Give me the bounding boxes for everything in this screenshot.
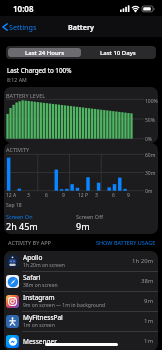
staticText: Last 24 Hours — [25, 49, 65, 57]
staticText: 50% — [145, 117, 155, 124]
staticText: 38m on screen — [23, 282, 58, 289]
staticText: Apollo — [23, 253, 43, 262]
staticText: 9m — [144, 297, 154, 305]
staticText: 0% — [145, 136, 153, 143]
staticText: 6 — [112, 192, 115, 199]
staticText: Battery — [68, 22, 95, 32]
staticText: Settings — [9, 22, 37, 32]
staticText: 3 — [95, 192, 98, 199]
staticText: Safari — [23, 273, 41, 282]
staticText: 1h 20m — [132, 257, 154, 265]
button[interactable]: Safari — [4, 271, 158, 291]
staticText: 8:12 AM — [7, 76, 27, 83]
staticText: 30m — [145, 170, 156, 177]
button[interactable]: Last 24 Hours — [8, 48, 81, 57]
button[interactable]: Apollo — [4, 251, 158, 271]
staticText: Screen On — [6, 213, 33, 220]
staticText: 1m — [144, 337, 154, 345]
staticText: 12 A — [6, 192, 17, 199]
staticText: 100% — [145, 98, 158, 105]
staticText: Last 10 Days — [100, 49, 136, 57]
staticText: MyFitnessPal — [23, 313, 63, 322]
staticText: Messenger — [23, 337, 57, 346]
staticText: 60m — [145, 152, 156, 159]
staticText: 9m on screen — 1m in background — [23, 302, 106, 309]
staticText: 2h 45m — [6, 220, 38, 232]
staticText: 0m — [145, 188, 153, 195]
staticText: 10:08 — [13, 3, 34, 14]
staticText: 9 — [127, 192, 130, 199]
staticText: 9m — [76, 220, 90, 232]
staticText: 1m — [144, 317, 154, 325]
staticText: Screen Off — [76, 213, 103, 220]
button[interactable]: Last 10 Days — [81, 48, 154, 57]
staticText: 38m — [141, 277, 154, 285]
button[interactable]: Messenger — [4, 331, 158, 350]
staticText: 3 — [27, 192, 30, 199]
button[interactable]: MyFitnessPal — [4, 311, 158, 331]
staticText: ACTIVITY BY APP — [8, 239, 51, 246]
staticText: Last Charged to 100% — [7, 66, 72, 75]
button[interactable]: Settings — [0, 16, 43, 37]
button[interactable]: SHOW BATTERY USAGE — [96, 239, 156, 246]
staticText: 6 — [45, 192, 48, 199]
button[interactable]: Instagram — [4, 291, 158, 311]
staticText: 1m on screen — [23, 322, 55, 329]
staticText: 1h 20m on screen — [23, 262, 65, 269]
staticText: BATTERY LEVEL — [6, 92, 46, 99]
staticText: 12 P — [78, 192, 89, 199]
staticText: Sep 18 — [6, 202, 22, 209]
staticText: Instagram — [23, 293, 55, 302]
staticText: ACTIVITY — [6, 146, 30, 153]
staticText: 9 — [62, 192, 65, 199]
